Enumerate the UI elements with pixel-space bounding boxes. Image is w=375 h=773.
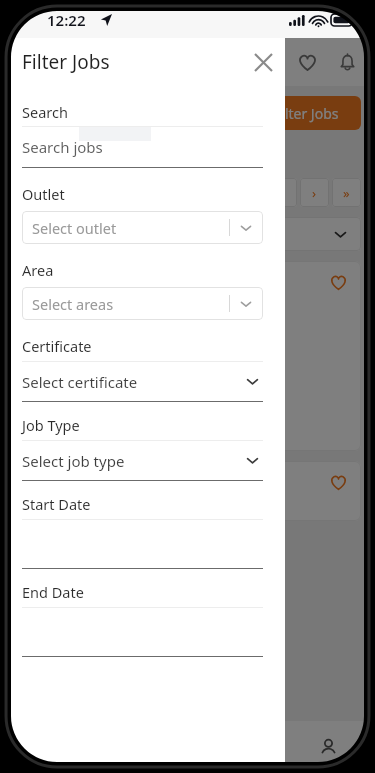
button[interactable]: Tab 1 <box>25 725 69 769</box>
button[interactable]: Select outlet <box>22 211 263 244</box>
staticText: Select areas <box>32 294 114 314</box>
button[interactable]: ‹ <box>268 178 297 207</box>
button[interactable]: Filter Jobs <box>251 96 361 130</box>
button[interactable]: Tab 3 <box>212 725 256 769</box>
staticText: Search jobs <box>22 137 103 157</box>
button[interactable] <box>14 217 361 251</box>
staticText: Select certificate <box>22 372 138 392</box>
button[interactable]: Notifications <box>329 44 365 80</box>
staticText: Filter Jobs <box>274 104 339 123</box>
staticText: Filter Jobs <box>22 49 110 75</box>
button[interactable]: Search jobs <box>0 127 285 167</box>
staticText: · <box>28 387 32 406</box>
button[interactable]: Favourite <box>327 271 349 293</box>
button[interactable]: Favourites <box>289 44 325 80</box>
button[interactable] <box>0 520 285 568</box>
staticText: Kitchen Assistant (10) <box>28 305 199 328</box>
button[interactable]: Select areas <box>22 287 263 320</box>
staticText: » <box>343 184 350 202</box>
staticText: Start Date <box>22 494 91 514</box>
button[interactable]: Tab 4 <box>306 725 350 769</box>
staticText: Outlet <box>22 184 65 204</box>
button[interactable]: » <box>332 178 361 207</box>
staticText: 09:00 - 11:00 <box>28 350 112 369</box>
button[interactable] <box>0 608 285 656</box>
staticText: Area <box>22 260 54 280</box>
button[interactable]: Tab 2 <box>119 725 163 769</box>
button[interactable]: Favourite <box>14 261 361 451</box>
staticText: 12:22 <box>47 10 86 30</box>
staticText: Job Type <box>22 415 80 435</box>
button[interactable]: Favourite <box>14 461 361 521</box>
staticText: › <box>312 184 317 202</box>
staticText: Certificate <box>22 336 92 356</box>
staticText: Select job type <box>22 451 125 471</box>
button[interactable]: › <box>300 178 329 207</box>
button[interactable]: Select job type <box>0 441 285 480</box>
button[interactable]: Select certificate <box>0 362 285 401</box>
staticText: Search <box>22 102 68 122</box>
button[interactable]: Close <box>245 44 281 80</box>
staticText: End Date <box>22 582 84 602</box>
staticText: Select outlet <box>32 218 117 238</box>
button[interactable]: Favourite <box>327 471 349 493</box>
